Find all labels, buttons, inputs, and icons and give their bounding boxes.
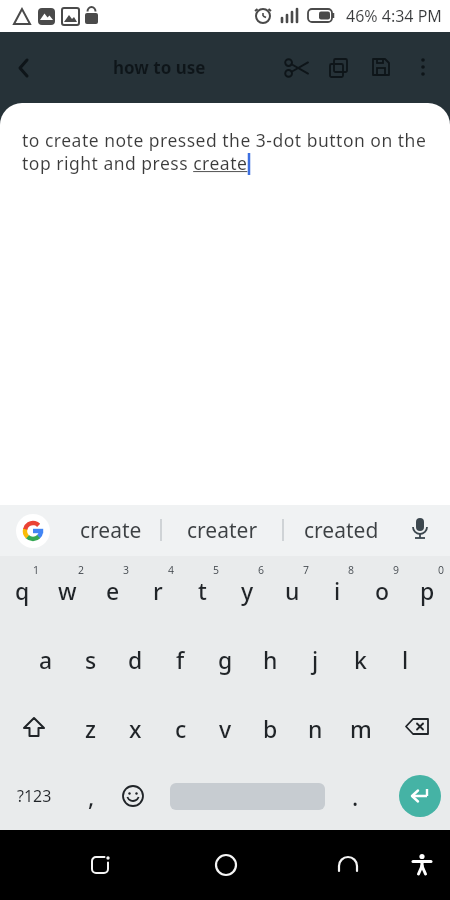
staticText: v xyxy=(219,713,232,744)
button[interactable]: n xyxy=(293,694,338,762)
staticText: h xyxy=(263,644,278,675)
staticText: 46% 4:34 PM xyxy=(346,5,442,27)
button[interactable]: m xyxy=(338,694,383,762)
staticText: u xyxy=(285,575,300,606)
button[interactable]: created xyxy=(284,505,398,556)
button[interactable]: create xyxy=(62,505,160,556)
staticText: f xyxy=(176,644,185,675)
button[interactable]: ?123 xyxy=(8,770,60,822)
staticText: to create note pressed the 3-dot button … xyxy=(22,128,427,175)
staticText: n xyxy=(308,713,323,744)
button[interactable]: v xyxy=(203,694,248,762)
button[interactable] xyxy=(276,47,318,89)
button[interactable]: k xyxy=(338,624,383,694)
staticText: q xyxy=(15,575,30,606)
staticText: e xyxy=(106,575,120,606)
staticText: s xyxy=(85,644,97,675)
button[interactable]: t xyxy=(180,556,225,624)
staticText: 0 xyxy=(438,563,445,577)
button[interactable]: l xyxy=(383,624,428,694)
button[interactable]: e xyxy=(90,556,135,624)
staticText: w xyxy=(58,575,77,606)
staticText: d xyxy=(128,644,143,675)
staticText: i xyxy=(334,575,341,606)
staticText: x xyxy=(129,713,142,744)
button[interactable]: f xyxy=(158,624,203,694)
button[interactable] xyxy=(383,694,450,762)
button[interactable] xyxy=(402,47,444,89)
button[interactable]: creater xyxy=(162,505,282,556)
staticText: m xyxy=(350,713,372,744)
button[interactable] xyxy=(0,44,48,92)
staticText: ?123 xyxy=(17,785,52,807)
button[interactable] xyxy=(204,843,248,887)
button[interactable] xyxy=(399,775,441,817)
button[interactable]: r xyxy=(135,556,180,624)
staticText: k xyxy=(354,644,367,675)
staticText: 9 xyxy=(393,563,400,577)
staticText: r xyxy=(153,575,163,606)
button[interactable]: s xyxy=(68,624,113,694)
button[interactable] xyxy=(318,47,360,89)
staticText: 7 xyxy=(303,563,310,577)
staticText: 2 xyxy=(78,563,85,577)
button[interactable] xyxy=(0,694,68,762)
button[interactable]: b xyxy=(248,694,293,762)
staticText: create xyxy=(80,516,142,545)
staticText: 6 xyxy=(258,563,265,577)
button[interactable]: z xyxy=(68,694,113,762)
button[interactable] xyxy=(114,777,152,815)
staticText: p xyxy=(420,575,435,606)
staticText: t xyxy=(198,575,207,606)
button[interactable]: y xyxy=(225,556,270,624)
staticText: b xyxy=(263,713,278,744)
button[interactable]: . xyxy=(336,777,374,815)
button[interactable] xyxy=(326,843,370,887)
staticText: 8 xyxy=(348,563,355,577)
button[interactable]: d xyxy=(113,624,158,694)
button[interactable]: g xyxy=(203,624,248,694)
staticText: j xyxy=(312,644,319,675)
staticText: g xyxy=(218,644,233,675)
staticText: l xyxy=(402,644,409,675)
staticText: how to use xyxy=(113,56,206,79)
button[interactable]: a xyxy=(23,624,68,694)
button[interactable] xyxy=(400,843,444,887)
staticText: y xyxy=(241,575,254,606)
button[interactable]: p xyxy=(405,556,450,624)
staticText: a xyxy=(39,644,53,675)
staticText: 3 xyxy=(123,563,130,577)
button[interactable]: j xyxy=(293,624,338,694)
button[interactable]: o xyxy=(360,556,405,624)
staticText: . xyxy=(352,781,359,812)
button[interactable]: x xyxy=(113,694,158,762)
button[interactable]: u xyxy=(270,556,315,624)
staticText: creater xyxy=(187,516,258,545)
button[interactable] xyxy=(78,843,122,887)
button[interactable] xyxy=(360,47,402,89)
staticText: 1 xyxy=(33,563,40,577)
staticText: 5 xyxy=(213,563,220,577)
button[interactable] xyxy=(16,514,50,548)
button[interactable]: c xyxy=(158,694,203,762)
button[interactable]: w xyxy=(45,556,90,624)
button[interactable]: i xyxy=(315,556,360,624)
staticText: z xyxy=(85,713,96,744)
button[interactable]: q xyxy=(0,556,45,624)
button[interactable]: , xyxy=(72,777,110,815)
staticText: created xyxy=(304,516,379,545)
staticText: o xyxy=(375,575,390,606)
button[interactable]: h xyxy=(248,624,293,694)
staticText: , xyxy=(88,781,95,812)
staticText: c xyxy=(175,713,187,744)
staticText: 4 xyxy=(168,563,175,577)
